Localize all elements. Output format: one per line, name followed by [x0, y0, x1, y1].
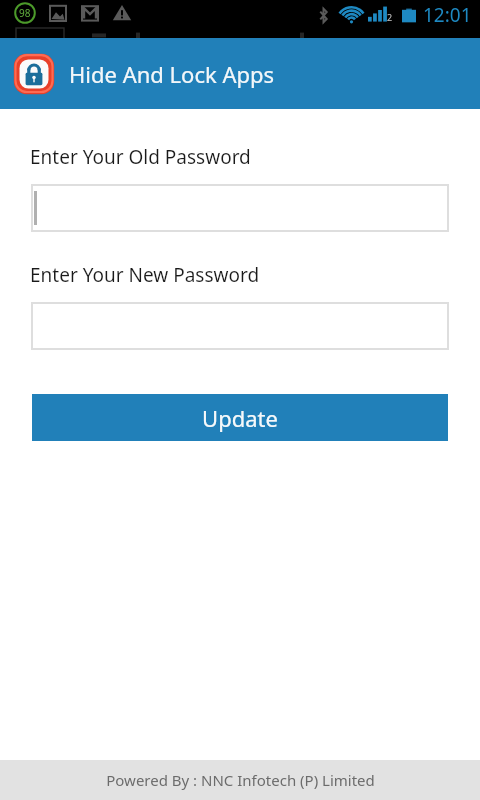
button[interactable]	[31, 184, 449, 232]
staticText: Enter Your Old Password	[30, 144, 251, 170]
staticText: Update	[202, 403, 278, 433]
staticText: Enter Your New Password	[30, 262, 260, 288]
other: App icon	[13, 53, 55, 95]
button[interactable]	[31, 302, 449, 350]
staticText: Hide And Lock Apps	[69, 59, 275, 89]
staticText: 12:01	[423, 2, 472, 28]
staticText: Powered By : NNC Infotech (P) Limited	[106, 770, 375, 790]
staticText: 98	[19, 6, 31, 20]
staticText: 2	[387, 11, 393, 23]
button[interactable]: Update	[32, 394, 448, 441]
